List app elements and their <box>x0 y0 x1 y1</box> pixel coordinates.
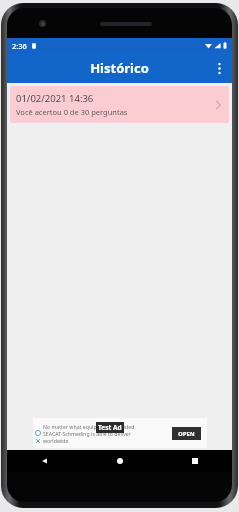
button[interactable]: Home <box>82 450 157 472</box>
staticText: 01/02/2021 14:36 <box>16 92 94 105</box>
staticText: SEACAT-Schmeding is able to deliver <box>43 430 131 437</box>
staticText: Você acertou 0 de 30 perguntas <box>16 107 128 117</box>
button[interactable]: Back <box>7 450 82 472</box>
staticText: OPEN <box>178 430 195 438</box>
button[interactable]: 01/02/2021 14:36 <box>10 86 229 123</box>
button[interactable]: Recent apps <box>157 450 232 472</box>
staticText: Test Ad <box>98 423 122 432</box>
staticText: worldwide <box>43 437 69 444</box>
button[interactable]: No matter what equipment is needed. <box>33 418 207 448</box>
button[interactable]: More options <box>206 55 232 81</box>
staticText: 2:36 <box>12 41 27 51</box>
button[interactable]: OPEN <box>172 427 201 440</box>
staticText: Histórico <box>90 59 149 77</box>
staticText: No matter what equipment is needed. <box>43 423 136 430</box>
